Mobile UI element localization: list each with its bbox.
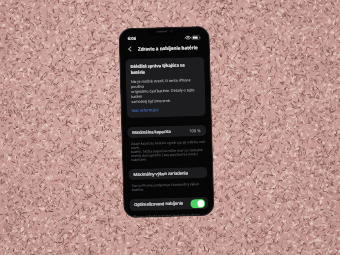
staticText: Nie je možné overiť, či tento iPhone pou… [131, 77, 200, 104]
button[interactable]: Optimalizované nabíjanie [129, 197, 208, 211]
staticText: Maximálna kapacita [132, 129, 171, 136]
staticText: Údaje kapacity batérie vyjadrujú jej nab… [130, 139, 206, 162]
staticText: Tento iPhone podporuje štandardný výkon … [132, 181, 207, 192]
staticText: 6:06 [128, 36, 137, 42]
staticText: Viac informácií [132, 107, 159, 113]
button[interactable]: Maximálny výkon zariadenia [128, 167, 208, 180]
button[interactable]: Optimalizované nabíjanie zapnuté [190, 199, 205, 208]
button[interactable]: Späť [125, 44, 135, 54]
staticText: 100 % [189, 128, 201, 133]
staticText: Maximálny výkon zariadenia [133, 170, 188, 178]
staticText: iPhone sa bude pamätať, kedy ho zvyčajne… [133, 212, 208, 217]
staticText: Dôležitá správa týkajúca sa batérie [130, 62, 200, 76]
button[interactable]: Viac informácií [132, 107, 159, 113]
staticText: Zdravie a nabíjanie batérie [138, 44, 198, 52]
button[interactable]: Dôležitá správa týkajúca sa batérie [125, 57, 206, 118]
button[interactable]: Maximálna kapacita [127, 125, 206, 138]
staticText: Optimalizované nabíjanie [134, 201, 183, 208]
